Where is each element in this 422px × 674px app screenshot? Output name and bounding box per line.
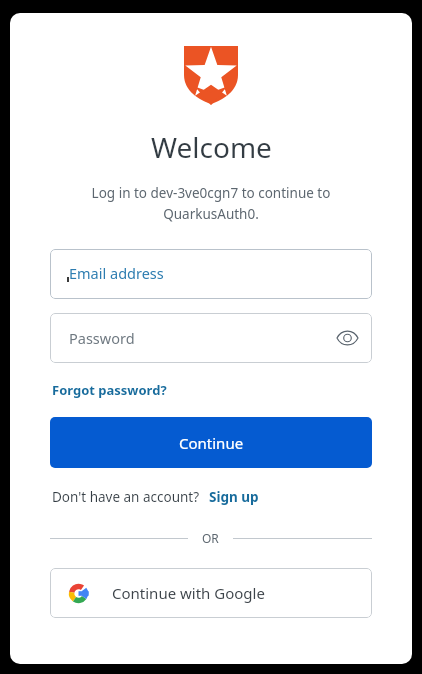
- button[interactable]: Continue: [50, 417, 372, 468]
- button[interactable]: Email address: [50, 249, 372, 299]
- staticText: Log in to dev-3ve0cgn7 to continue to Qu…: [82, 184, 340, 223]
- button[interactable]: Continue with Google: [50, 568, 372, 618]
- staticText: Continue with Google: [112, 583, 265, 603]
- staticText: OR: [202, 530, 219, 546]
- button[interactable]: Sign up: [209, 488, 259, 506]
- staticText: Password: [69, 328, 135, 348]
- staticText: Don't have an account?: [52, 488, 200, 506]
- button[interactable]: Show password: [332, 323, 362, 353]
- staticText: Forgot password?: [52, 381, 167, 399]
- staticText: Sign up: [209, 488, 259, 506]
- staticText: Continue: [179, 433, 244, 453]
- button[interactable]: Forgot password?: [52, 381, 167, 399]
- staticText: Welcome: [151, 128, 272, 166]
- staticText: Email address: [69, 263, 164, 283]
- button[interactable]: Password: [50, 313, 372, 363]
